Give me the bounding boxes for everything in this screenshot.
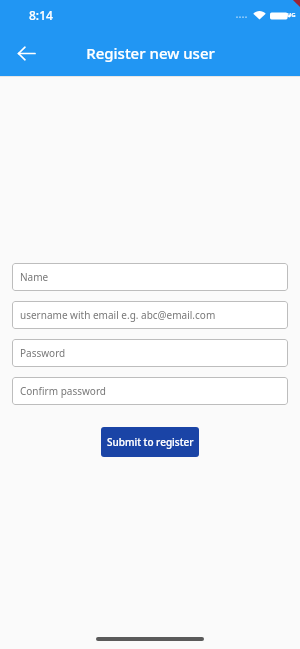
button[interactable]: Confirm password	[12, 377, 288, 405]
staticText: Password	[20, 346, 66, 360]
button[interactable]: username with email e.g. abc@email.com	[12, 301, 288, 329]
staticText: Name	[20, 270, 49, 284]
button[interactable]: Name	[12, 263, 288, 291]
button[interactable]: Back	[8, 35, 44, 71]
staticText: 8:14	[29, 7, 53, 23]
staticText: username with email e.g. abc@email.com	[20, 308, 216, 322]
staticText: Register new user	[86, 43, 215, 63]
staticText: Submit to register	[107, 435, 194, 449]
button[interactable]: Password	[12, 339, 288, 367]
button[interactable]: Submit to register	[101, 427, 199, 457]
staticText: DEBUG	[275, 11, 296, 19]
staticText: Confirm password	[20, 384, 106, 398]
